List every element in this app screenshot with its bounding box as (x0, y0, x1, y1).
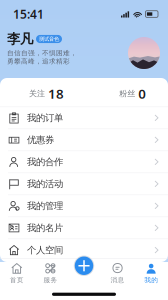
button[interactable]: 我的合作 (0, 151, 168, 173)
button[interactable]: 我的 (134, 258, 168, 288)
staticText: 测试音色 (39, 36, 59, 42)
staticText: 我的合作 (27, 156, 63, 168)
staticText: 我的活动 (27, 178, 63, 190)
button[interactable]: 我的管理 (0, 195, 168, 217)
staticText: 李凡 (7, 31, 33, 47)
staticText: 首页 (10, 276, 24, 284)
staticText: 服务 (43, 276, 57, 284)
button[interactable]: 我的名片 (0, 217, 168, 239)
staticText: 我的订单 (27, 112, 63, 124)
button[interactable]: 我的活动 (0, 173, 168, 195)
button[interactable]: 关注 (0, 78, 84, 107)
button[interactable]: 首页 (0, 258, 34, 288)
button[interactable]: 我的订单 (0, 107, 168, 129)
staticText: 15:41 (13, 6, 44, 22)
button[interactable]: Create (67, 258, 101, 279)
button[interactable]: 粉丝 (84, 78, 168, 107)
staticText: 关注 (29, 89, 45, 98)
button[interactable]: 服务 (34, 258, 67, 288)
staticText: 个人空间 (27, 244, 63, 256)
staticText: 粉丝 (119, 89, 135, 98)
staticText: 18 (48, 85, 64, 102)
staticText: 我的名片 (27, 222, 63, 234)
staticText: 优惠券 (27, 134, 54, 146)
staticText: 我的 (144, 276, 158, 284)
staticText: 自信自强，不惧困难，勇攀高峰，追求精彩 (7, 49, 77, 65)
button[interactable]: 优惠券 (0, 129, 168, 151)
staticText: 0 (138, 85, 146, 102)
button[interactable]: 个人空间 (0, 239, 168, 261)
button[interactable]: 消息 (101, 258, 134, 288)
staticText: 消息 (111, 276, 125, 284)
staticText: 我的管理 (27, 200, 63, 212)
